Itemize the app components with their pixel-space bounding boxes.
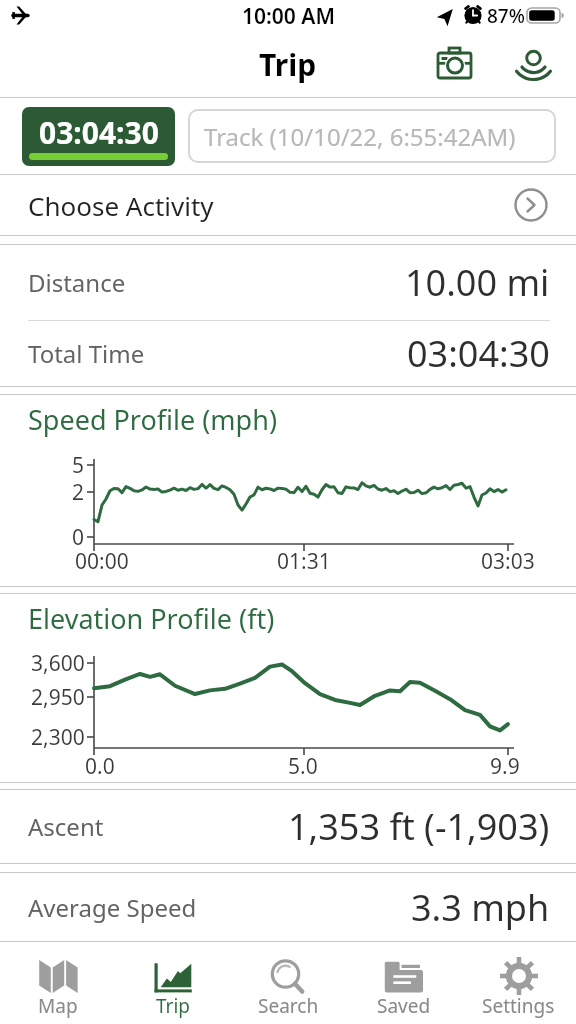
button[interactable]: 03:04:30 — [22, 107, 175, 166]
staticText: 03:04:30 — [39, 112, 159, 153]
staticText: 03:03 — [481, 547, 535, 575]
staticText: 00:00 — [75, 547, 129, 575]
staticText: Ascent — [28, 810, 104, 843]
button[interactable]: Total Time — [0, 321, 576, 386]
button[interactable]: Search — [231, 942, 346, 1024]
button[interactable]: Distance — [0, 245, 576, 320]
staticText: Distance — [28, 266, 126, 299]
staticText: 03:04:30 — [407, 329, 550, 378]
button[interactable]: Settings — [461, 942, 576, 1024]
button[interactable]: Ascent — [0, 790, 576, 863]
staticText: 01:31 — [277, 547, 331, 575]
staticText: Settings — [482, 993, 555, 1019]
staticText: Trip — [259, 44, 317, 85]
staticText: 5 — [72, 451, 85, 479]
staticText: 3.3 mph — [411, 883, 550, 932]
staticText: 2,300 — [31, 723, 85, 751]
button[interactable]: Average Speed — [0, 873, 576, 941]
staticText: Average Speed — [28, 891, 197, 924]
staticText: Track (10/10/22, 6:55:42AM) — [204, 120, 516, 153]
staticText: 3,600 — [31, 649, 85, 677]
staticText: Total Time — [28, 337, 145, 370]
staticText: Map — [38, 993, 78, 1019]
staticText: Elevation Profile (ft) — [28, 600, 275, 637]
staticText: Choose Activity — [28, 188, 214, 223]
button[interactable]: Trip — [116, 942, 231, 1024]
staticText: 9.9 — [490, 752, 520, 780]
button[interactable]: Saved — [346, 942, 461, 1024]
staticText: Speed Profile (mph) — [28, 401, 277, 438]
staticText: 10.00 mi — [405, 258, 550, 307]
staticText: 10:00 AM — [242, 2, 335, 31]
button[interactable]: Track (10/10/22, 6:55:42AM) — [188, 109, 556, 163]
staticText: 0.0 — [85, 752, 115, 780]
staticText: Trip — [156, 993, 191, 1019]
button[interactable] — [430, 42, 476, 84]
staticText: 2,950 — [31, 683, 85, 711]
button[interactable]: Choose Activity — [0, 175, 576, 235]
staticText: Saved — [377, 993, 431, 1019]
staticText: 2 — [72, 478, 85, 506]
button[interactable]: Map — [0, 942, 116, 1024]
button[interactable] — [512, 42, 556, 86]
staticText: Search — [258, 993, 319, 1019]
staticText: 0 — [72, 523, 85, 551]
staticText: 5.0 — [288, 752, 318, 780]
staticText: 1,353 ft (-1,903) — [288, 802, 550, 851]
staticText: 87% — [487, 3, 525, 29]
